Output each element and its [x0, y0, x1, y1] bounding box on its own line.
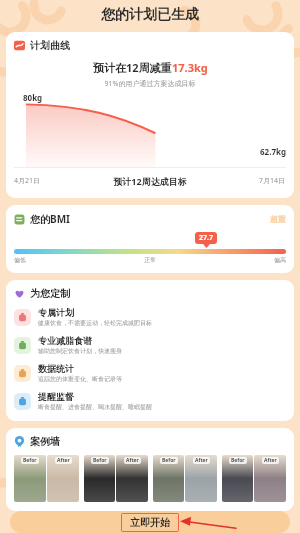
staticText: 计划曲线 [30, 39, 70, 52]
staticText: 您的计划已生成 [0, 6, 300, 24]
button[interactable]: 立即开始 [10, 511, 290, 533]
button[interactable]: Before and after photo [84, 455, 115, 502]
staticText: 健康饮食，不需要运动，轻松完成减肥目标 [38, 319, 152, 327]
staticText: Befor [231, 457, 245, 464]
staticText: 案例墙 [30, 435, 60, 448]
staticText: 偏高 [274, 256, 286, 264]
button[interactable]: Before and after photo [14, 455, 46, 502]
staticText: 正常 [26, 256, 274, 264]
staticText: 辅助您制定饮食计划，快速瘦身 [38, 347, 122, 355]
button[interactable]: Before and after photo [153, 455, 184, 502]
staticText: 预计12周达成目标 [41, 175, 259, 187]
staticText: 您的BMI [30, 212, 70, 226]
button[interactable]: Before and after photo [222, 455, 253, 502]
staticText: After [195, 457, 208, 464]
staticText: 专属计划 [38, 307, 74, 318]
staticText: 17.3kg [172, 60, 208, 75]
staticText: 偏低 [14, 256, 26, 264]
staticText: 超重 [270, 214, 286, 224]
button[interactable]: Before and after photo [254, 455, 286, 502]
staticText: 4月21日 [14, 176, 41, 186]
staticText: 27.7 [199, 233, 213, 243]
staticText: Befor [23, 457, 37, 464]
staticText: 预计在12周减重 [93, 60, 172, 75]
button[interactable]: Before and after photo [116, 455, 148, 502]
staticText: 80kg [23, 92, 43, 103]
staticText: 7月14日 [259, 176, 286, 186]
staticText: 为您定制 [30, 287, 70, 300]
button[interactable]: Before and after photo [185, 455, 217, 502]
staticText: 断食提醒、进食提醒、喝水提醒、睡眠提醒 [38, 403, 152, 411]
staticText: 专业减脂食谱 [38, 335, 92, 346]
staticText: 提醒监督 [38, 391, 74, 402]
staticText: Befor [162, 457, 176, 464]
button[interactable]: 提醒监督 [14, 391, 286, 411]
staticText: 91%的用户通过方案达成目标 [14, 79, 286, 89]
button[interactable]: 数据统计 [14, 363, 286, 383]
button[interactable]: 专业减脂食谱 [14, 335, 286, 355]
staticText: 62.7kg [260, 146, 286, 157]
staticText: 数据统计 [38, 363, 74, 374]
button[interactable]: Before and after photo [47, 455, 79, 502]
staticText: Befor [93, 457, 107, 464]
staticText: 立即开始 [130, 516, 170, 529]
staticText: After [57, 457, 70, 464]
staticText: After [126, 457, 139, 464]
button[interactable]: 专属计划 [14, 307, 286, 327]
staticText: After [264, 457, 277, 464]
staticText: 追踪您的体重变化、断食记录等 [38, 375, 122, 383]
